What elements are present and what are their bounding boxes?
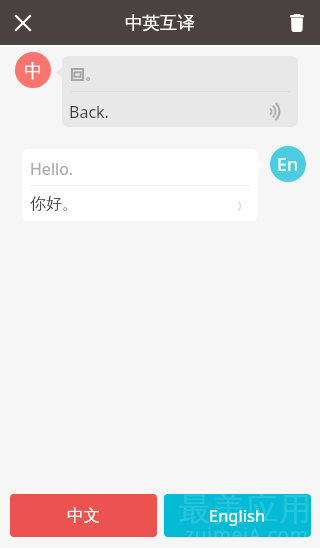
staticText: English [209, 504, 266, 526]
staticText: 中 [24, 59, 43, 82]
button[interactable]: En [270, 146, 306, 182]
button[interactable]: Back. [62, 56, 298, 127]
staticText: 中英互译 [125, 12, 195, 34]
staticText: 你好。 [30, 194, 78, 214]
button[interactable]: 中 [15, 52, 51, 88]
button[interactable]: Close [3, 3, 43, 43]
button[interactable]: Delete [277, 3, 317, 43]
button[interactable]: 最美应用 [164, 494, 311, 537]
staticText: En [277, 152, 299, 177]
button[interactable]: 中文 [10, 494, 157, 537]
staticText: 中文 [67, 505, 100, 526]
staticText: Back. [69, 101, 109, 123]
button[interactable]: Hello. [22, 149, 258, 221]
staticText: 最美应用 [178, 494, 311, 529]
staticText: zuimeiA.com [185, 522, 309, 537]
staticText: Hello. [30, 158, 74, 180]
